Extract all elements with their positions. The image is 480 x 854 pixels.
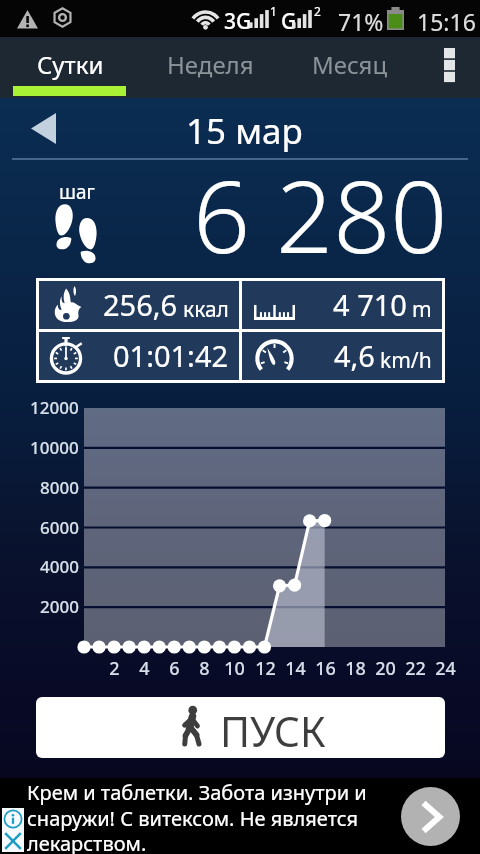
staticText: 24 [435, 656, 456, 681]
staticText: 14 [285, 656, 306, 681]
button[interactable]: Ad info [2, 808, 24, 830]
staticText: 20 [375, 656, 396, 681]
staticText: 6 [169, 656, 180, 681]
staticText: 15 мар [186, 107, 303, 155]
staticText: 2 [109, 656, 120, 681]
staticText: 15:16 [417, 6, 476, 37]
staticText: Крем и таблетки. Забота изнутри и снаруж… [27, 779, 372, 854]
staticText: 256,6 [103, 285, 178, 324]
staticText: 10000 [30, 436, 79, 459]
button[interactable]: Неделя [140, 37, 280, 98]
button[interactable]: Месяц [280, 37, 420, 98]
button[interactable]: Previous day [12, 102, 74, 154]
staticText: 4 710 [333, 285, 407, 324]
staticText: 4 [139, 656, 150, 681]
staticText: Месяц [312, 48, 388, 81]
button[interactable]: 256,6 [39, 281, 239, 329]
staticText: 8 [199, 656, 210, 681]
staticText: 71% [338, 6, 384, 37]
staticText: 1 [270, 3, 277, 19]
staticText: 18 [345, 656, 366, 681]
staticText: 4,6 [334, 336, 375, 375]
staticText: 6000 [40, 516, 79, 539]
staticText: Неделя [167, 48, 254, 81]
staticText: 16 [315, 656, 336, 681]
staticText: 01:01:42 [113, 336, 229, 375]
staticText: 22 [405, 656, 426, 681]
button[interactable]: Сутки [0, 37, 140, 98]
staticText: 12000 [30, 396, 79, 419]
staticText: G [281, 7, 297, 36]
button[interactable]: Close ad [2, 830, 24, 852]
staticText: ПУСК [220, 703, 326, 758]
staticText: Сутки [37, 48, 104, 81]
staticText: ккал [183, 295, 229, 324]
button[interactable]: 4,6 [242, 332, 442, 380]
button[interactable]: 4 710 [242, 281, 442, 329]
button[interactable]: More options [420, 37, 480, 98]
staticText: 12 [255, 656, 276, 681]
staticText: 6 280 [193, 146, 448, 282]
staticText: 10 [224, 656, 245, 681]
button[interactable]: ПУСК [36, 697, 445, 758]
staticText: 2000 [40, 595, 79, 618]
staticText: m [412, 295, 432, 324]
staticText: 2 [314, 3, 321, 19]
staticText: 3G [224, 7, 252, 36]
button[interactable]: 01:01:42 [39, 332, 239, 380]
staticText: km/h [380, 346, 432, 375]
staticText: 8000 [40, 476, 79, 499]
staticText: 4000 [40, 555, 79, 578]
staticText: шаг [59, 179, 95, 205]
button[interactable]: Next ad [401, 787, 460, 846]
